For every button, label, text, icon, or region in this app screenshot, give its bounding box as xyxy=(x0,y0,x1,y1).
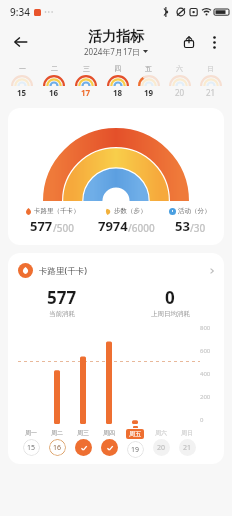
staticText: 577 xyxy=(47,286,77,309)
staticText: 9:34 xyxy=(10,5,30,19)
staticText: /500 xyxy=(53,221,75,235)
button[interactable]: 日 xyxy=(195,64,226,98)
staticText: 15 xyxy=(27,443,36,453)
staticText: 上周日均消耗 xyxy=(151,310,190,318)
button[interactable]: 二 xyxy=(38,64,70,98)
button[interactable]: 周四 xyxy=(96,426,122,456)
staticText: 卡路里（千卡） xyxy=(34,207,80,215)
staticText: 577 xyxy=(30,217,53,235)
staticText: 200 xyxy=(200,393,211,401)
button[interactable]: More options xyxy=(202,30,226,54)
staticText: 日 xyxy=(207,64,214,73)
button[interactable]: 卡路里（千卡） xyxy=(8,108,224,245)
button[interactable]: 周六 xyxy=(148,426,174,456)
staticText: 16 xyxy=(53,443,62,453)
button[interactable]: Share xyxy=(176,29,202,55)
button[interactable]: 卡路里(千卡) xyxy=(18,263,216,278)
staticText: 7974 xyxy=(98,217,128,235)
staticText: 53 xyxy=(175,217,190,235)
staticText: 周二 xyxy=(51,429,63,437)
button[interactable]: 周日 xyxy=(174,426,200,456)
button[interactable]: 三 xyxy=(70,64,102,98)
staticText: 四 xyxy=(114,64,121,73)
staticText: 周三 xyxy=(77,429,89,437)
staticText: 16 xyxy=(49,87,59,98)
button[interactable]: Back xyxy=(8,29,34,55)
staticText: 步数（步） xyxy=(114,207,147,215)
staticText: 400 xyxy=(200,370,211,378)
staticText: 周四 xyxy=(103,429,115,437)
button[interactable]: 五 xyxy=(133,64,164,98)
staticText: 15 xyxy=(17,87,27,98)
button[interactable]: 六 xyxy=(164,64,195,98)
staticText: 活动（分） xyxy=(178,207,211,215)
button[interactable]: 周一 xyxy=(18,426,44,456)
staticText: 周五 xyxy=(129,430,141,438)
staticText: 0 xyxy=(165,286,175,309)
button[interactable]: 周三 xyxy=(70,426,96,456)
staticText: 卡路里(千卡) xyxy=(39,265,87,277)
staticText: 周一 xyxy=(25,429,37,437)
button[interactable]: 2024年7月17日 xyxy=(84,46,148,57)
button[interactable]: 周二 xyxy=(44,426,70,456)
staticText: 17 xyxy=(81,87,91,98)
staticText: /30 xyxy=(190,221,206,235)
staticText: 周日 xyxy=(181,429,193,437)
staticText: 21 xyxy=(206,87,216,98)
staticText: 五 xyxy=(145,64,152,73)
staticText: 当前消耗 xyxy=(49,310,75,318)
staticText: 三 xyxy=(83,64,90,73)
staticText: 21 xyxy=(183,443,192,453)
button[interactable]: 一 xyxy=(6,64,38,98)
staticText: 20 xyxy=(157,443,166,453)
staticText: 18 xyxy=(113,87,123,98)
staticText: 0 xyxy=(200,416,204,424)
staticText: /6000 xyxy=(128,221,155,235)
staticText: 活力指标 xyxy=(88,28,144,46)
staticText: 六 xyxy=(176,64,183,73)
button[interactable]: 四 xyxy=(102,64,133,98)
staticText: 20 xyxy=(175,87,185,98)
staticText: 19 xyxy=(131,445,140,455)
staticText: 600 xyxy=(200,347,211,355)
staticText: 周六 xyxy=(155,429,167,437)
staticText: 二 xyxy=(51,64,58,73)
staticText: 800 xyxy=(200,324,211,332)
staticText: 2024年7月17日 xyxy=(84,46,141,57)
button[interactable]: 周五 xyxy=(122,426,148,458)
staticText: 一 xyxy=(19,64,26,73)
staticText: 19 xyxy=(144,87,154,98)
